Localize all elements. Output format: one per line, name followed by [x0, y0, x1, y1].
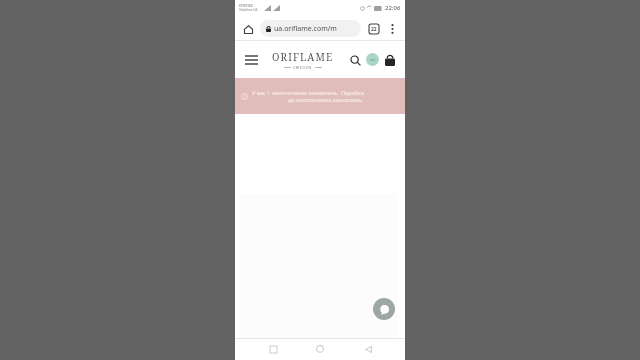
staticText: ua [370, 57, 375, 62]
button[interactable]: Account [366, 53, 379, 66]
staticText: ua.oriflame.com/m [274, 24, 337, 34]
button[interactable]: Recents [263, 339, 283, 359]
button[interactable]: Home [310, 339, 330, 359]
button[interactable]: Search [347, 52, 363, 68]
button[interactable]: Home [240, 21, 256, 37]
button[interactable]: Menu [242, 51, 260, 69]
staticText: У вас 1 неоплачених замовлень. [252, 89, 341, 96]
button[interactable]: Shopping bag [382, 52, 398, 68]
staticText: 22:06 [385, 4, 401, 12]
staticText: SWEDEN [293, 65, 313, 70]
staticText: KYIVSTAR [239, 4, 253, 8]
staticText: до неоплачених замовлень. [252, 96, 399, 103]
button[interactable]: Back [358, 339, 378, 359]
button[interactable]: ua.oriflame.com/m [260, 20, 361, 37]
staticText: Перейти [341, 89, 364, 96]
staticText: Vodafone UA [239, 8, 258, 12]
button[interactable]: More options [384, 21, 400, 37]
button[interactable]: Chat [373, 298, 395, 320]
button[interactable]: У вас 1 неоплачених замовлень. [235, 78, 405, 114]
button[interactable]: Tabs [366, 21, 382, 37]
staticText: ORIFLAME [272, 50, 334, 64]
staticText: 22 [371, 26, 377, 33]
